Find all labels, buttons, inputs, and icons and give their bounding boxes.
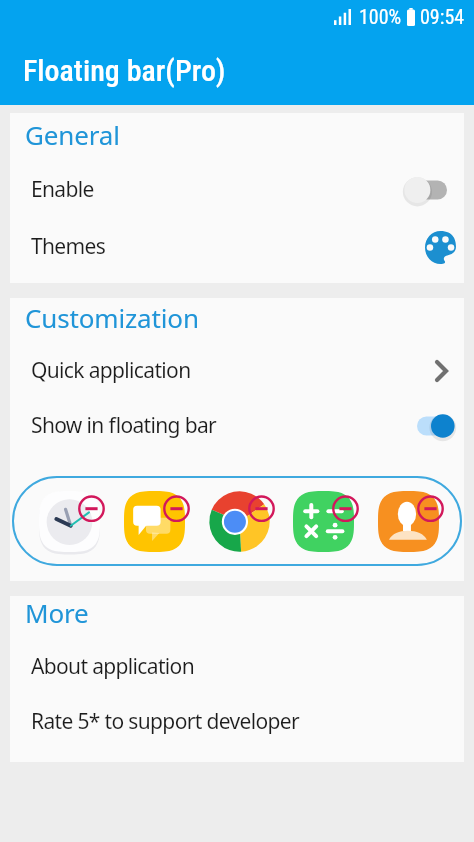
staticText: Themes (31, 232, 106, 261)
staticText: Show in floating bar (31, 411, 217, 440)
staticText: Customization (25, 300, 199, 335)
button[interactable]: Remove Messages (121, 488, 188, 555)
button[interactable]: Remove Contacts (375, 488, 442, 555)
button[interactable]: Remove Clock (36, 488, 103, 555)
staticText: Enable (31, 175, 94, 204)
button[interactable]: Rate 5* to support developer (10, 694, 464, 749)
staticText: More (25, 595, 89, 630)
button[interactable]: Enable (10, 161, 464, 218)
staticText: Floating bar(Pro) (23, 53, 226, 88)
button[interactable]: On (408, 411, 456, 441)
button[interactable]: Remove Chrome (206, 488, 273, 555)
staticText: Rate 5* to support developer (31, 707, 300, 736)
staticText: 100% (359, 5, 402, 28)
button[interactable]: Themes (10, 218, 464, 275)
button[interactable]: Off (408, 175, 456, 205)
button[interactable]: Open quick application (423, 353, 459, 389)
staticText: 09:54 (420, 5, 465, 28)
button[interactable]: About application (10, 639, 464, 694)
button[interactable]: Themes (420, 227, 460, 267)
button[interactable]: Remove Calculator (290, 488, 357, 555)
staticText: Quick application (31, 356, 191, 385)
button[interactable]: Show in floating bar (10, 398, 464, 453)
button[interactable]: Quick application (10, 343, 464, 398)
staticText: General (25, 117, 120, 152)
staticText: About application (31, 652, 194, 681)
